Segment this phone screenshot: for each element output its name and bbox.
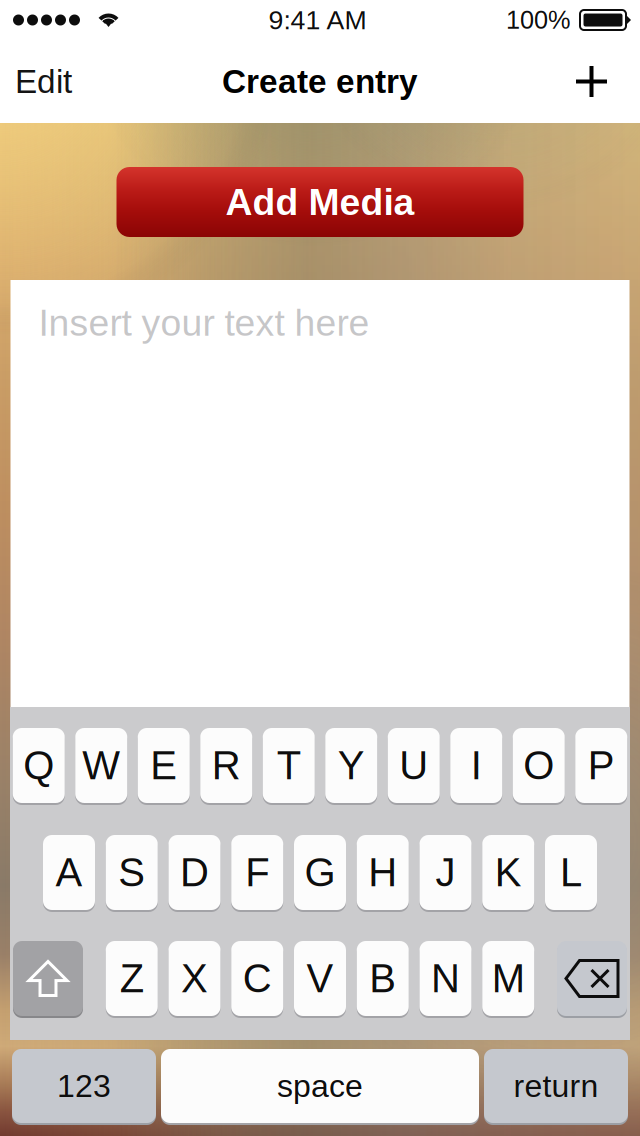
staticText: S	[118, 850, 145, 895]
button[interactable]: V	[294, 941, 346, 1018]
button[interactable]: P	[575, 728, 627, 805]
button[interactable]: K	[482, 835, 534, 912]
button[interactable]: X	[168, 941, 220, 1018]
button[interactable]: Add entry	[558, 50, 639, 113]
button[interactable]: J	[419, 835, 471, 912]
staticText: O	[523, 743, 554, 788]
staticText: Q	[23, 743, 54, 788]
staticText: E	[150, 743, 177, 788]
button[interactable]: I	[450, 728, 502, 805]
staticText: 123	[57, 1068, 111, 1104]
button[interactable]: Z	[106, 941, 158, 1018]
button[interactable]: A	[43, 835, 95, 912]
staticText: Y	[338, 743, 365, 788]
button[interactable]: M	[482, 941, 534, 1018]
staticText: Z	[120, 956, 144, 1001]
button[interactable]: Add Media	[116, 167, 523, 237]
staticText: I	[471, 743, 482, 788]
staticText: P	[588, 743, 615, 788]
staticText: G	[304, 850, 335, 895]
staticText: 9:41 AM	[268, 5, 366, 35]
button[interactable]: 123	[12, 1049, 156, 1125]
staticText: C	[243, 956, 272, 1001]
button[interactable]: B	[357, 941, 409, 1018]
staticText: T	[277, 743, 301, 788]
button[interactable]: W	[75, 728, 127, 805]
button[interactable]: C	[231, 941, 283, 1018]
button[interactable]: N	[419, 941, 471, 1018]
button[interactable]: E	[138, 728, 190, 805]
staticText: space	[277, 1068, 363, 1104]
button[interactable]: Edit	[1, 47, 98, 116]
button[interactable]: T	[263, 728, 315, 805]
staticText: U	[399, 743, 428, 788]
button[interactable]: D	[168, 835, 220, 912]
staticText: Create entry	[222, 63, 418, 100]
button[interactable]: O	[513, 728, 565, 805]
button[interactable]: return	[484, 1049, 628, 1125]
button[interactable]: F	[231, 835, 283, 912]
staticText: K	[495, 850, 522, 895]
button[interactable]: space	[161, 1049, 479, 1125]
staticText: H	[368, 850, 397, 895]
staticText: F	[245, 850, 269, 895]
staticText: B	[369, 956, 396, 1001]
button[interactable]: H	[357, 835, 409, 912]
staticText: J	[435, 850, 455, 895]
staticText: A	[55, 850, 82, 895]
button[interactable]: L	[545, 835, 597, 912]
staticText: Add Media	[225, 181, 414, 223]
button[interactable]: G	[294, 835, 346, 912]
staticText: D	[180, 850, 209, 895]
button[interactable]: S	[106, 835, 158, 912]
staticText: R	[212, 743, 241, 788]
staticText: V	[306, 956, 333, 1001]
button[interactable]: Q	[13, 728, 65, 805]
staticText: 100%	[506, 6, 571, 34]
staticText: Edit	[15, 63, 72, 100]
staticText: L	[560, 850, 582, 895]
button[interactable]: U	[388, 728, 440, 805]
staticText: W	[82, 743, 120, 788]
button[interactable]: Y	[325, 728, 377, 805]
button[interactable]: Delete	[557, 941, 627, 1018]
staticText: return	[513, 1068, 598, 1104]
staticText: X	[181, 956, 208, 1001]
button[interactable]: R	[200, 728, 252, 805]
button[interactable]: Shift	[13, 941, 83, 1018]
staticText: N	[431, 956, 460, 1001]
staticText: M	[492, 956, 525, 1001]
staticText: Insert your text here	[38, 302, 369, 344]
